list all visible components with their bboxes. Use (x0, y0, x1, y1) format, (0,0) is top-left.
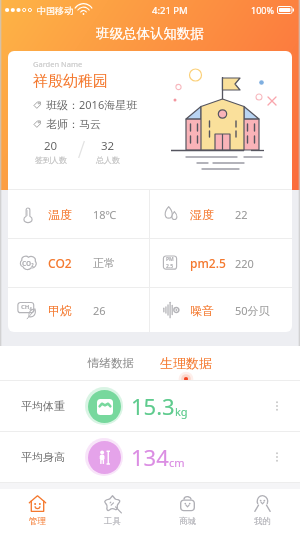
button[interactable]: 温度 (8, 190, 149, 238)
staticText: 50分贝 (235, 303, 270, 318)
staticText: 20 (44, 138, 58, 154)
staticText: 湿度 (190, 207, 214, 222)
staticText: 甲烷 (48, 303, 72, 318)
staticText: 噪音 (190, 303, 214, 318)
button[interactable]: 平均身高 (0, 432, 300, 482)
staticText: 4:21 PM (152, 4, 188, 17)
staticText: CH₄ (21, 303, 32, 311)
staticText: 26 (93, 303, 106, 318)
staticText: 平均身高 (21, 450, 65, 464)
staticText: cm (169, 455, 185, 470)
staticText: 平均体重 (21, 399, 65, 413)
staticText: 工具 (104, 516, 121, 527)
staticText: CO₂ (22, 259, 34, 268)
button[interactable]: 生理数据 (148, 346, 224, 380)
staticText: pm2.5 (190, 255, 226, 271)
staticText: CO2 (48, 255, 72, 271)
staticText: 商城 (179, 516, 196, 527)
staticText: 100% (251, 4, 274, 16)
staticText: 总人数 (96, 155, 120, 165)
staticText: 正常 (93, 256, 115, 270)
staticText: 2.5 (166, 263, 174, 270)
staticText: 我的 (254, 516, 271, 527)
staticText: 32 (101, 138, 115, 154)
staticText: 中国移动 (37, 5, 73, 16)
staticText: Garden Name (33, 59, 83, 69)
staticText: 18℃ (93, 207, 117, 222)
button[interactable]: 商城 (150, 489, 225, 533)
staticText: 220 (235, 256, 254, 271)
button[interactable]: More options (268, 397, 286, 415)
staticText: 祥殷幼稚园 (33, 72, 108, 91)
button[interactable]: More options (268, 448, 286, 466)
staticText: 生理数据 (160, 355, 212, 371)
staticText: 签到人数 (35, 155, 67, 165)
staticText: 班级：2016海星班 (46, 97, 138, 112)
button[interactable]: 工具 (75, 489, 150, 533)
staticText: 134 (131, 442, 169, 472)
staticText: 15.3 (131, 391, 175, 421)
button[interactable]: 我的 (225, 489, 300, 533)
staticText: 温度 (48, 207, 72, 222)
staticText: 老师：马云 (46, 117, 101, 131)
staticText: 班级总体认知数据 (96, 25, 204, 42)
staticText: PM (166, 256, 174, 263)
staticText: 情绪数据 (88, 356, 134, 370)
button[interactable]: 情绪数据 (76, 346, 146, 380)
button[interactable]: 管理 (0, 489, 75, 533)
button[interactable]: PM (150, 239, 292, 287)
staticText: 管理 (29, 516, 46, 527)
button[interactable]: 噪音 (150, 288, 292, 332)
button[interactable]: 平均体重 (0, 381, 300, 431)
button[interactable]: CH₄ (8, 288, 149, 332)
button[interactable]: 湿度 (150, 190, 292, 238)
staticText: 22 (235, 207, 248, 222)
button[interactable]: CO₂ (8, 239, 149, 287)
staticText: kg (175, 404, 188, 419)
